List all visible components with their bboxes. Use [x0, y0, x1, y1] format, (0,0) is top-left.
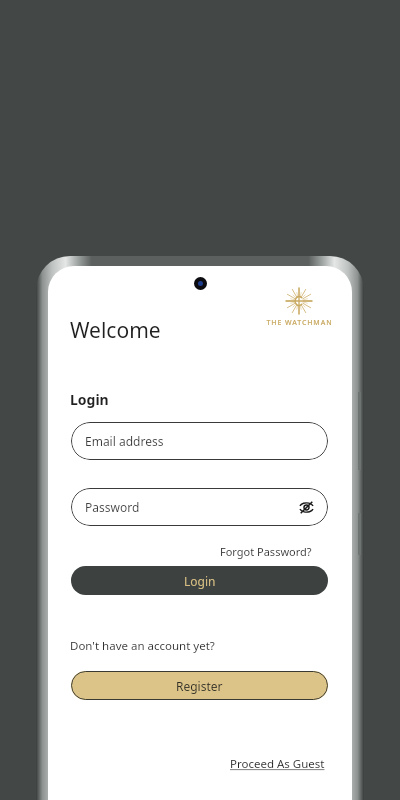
- button[interactable]: Show password: [294, 495, 318, 519]
- staticText: Login: [184, 573, 216, 589]
- staticText: Login: [70, 390, 109, 409]
- staticText: THE WATCHMAN: [266, 318, 333, 328]
- staticText: Register: [176, 678, 223, 694]
- button[interactable]: Register: [71, 671, 328, 700]
- staticText: Welcome: [70, 316, 161, 345]
- staticText: Password: [85, 499, 140, 515]
- button[interactable]: Proceed As Guest: [228, 754, 327, 774]
- staticText: Proceed As Guest: [230, 756, 325, 772]
- staticText: Forgot Password?: [220, 544, 312, 559]
- button[interactable]: Forgot Password?: [218, 543, 314, 560]
- button[interactable]: Login: [71, 566, 328, 595]
- staticText: Don't have an account yet?: [70, 638, 215, 654]
- staticText: Email address: [85, 433, 164, 449]
- button[interactable]: Email address: [71, 422, 328, 460]
- button[interactable]: Password: [71, 488, 328, 526]
